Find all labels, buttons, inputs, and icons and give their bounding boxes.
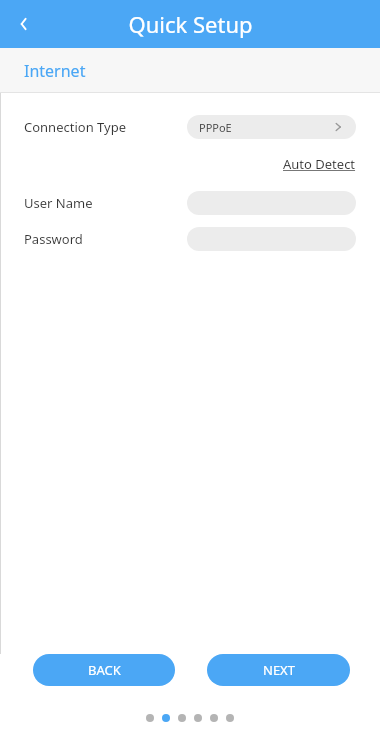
staticText: Quick Setup bbox=[128, 9, 253, 39]
staticText: Password bbox=[24, 230, 83, 248]
staticText: User Name bbox=[24, 194, 93, 212]
staticText: Auto Detect bbox=[283, 155, 356, 173]
button[interactable] bbox=[187, 227, 356, 251]
button[interactable]: Back bbox=[0, 0, 48, 48]
staticText: PPPoE bbox=[199, 120, 232, 135]
staticText: NEXT bbox=[263, 661, 295, 679]
button[interactable]: Auto Detect bbox=[283, 155, 356, 173]
staticText: Internet bbox=[24, 60, 86, 82]
button[interactable] bbox=[187, 191, 356, 215]
button[interactable]: PPPoE bbox=[187, 115, 356, 139]
button[interactable]: NEXT bbox=[207, 654, 350, 686]
button[interactable]: BACK bbox=[33, 654, 175, 686]
staticText: BACK bbox=[88, 661, 121, 679]
staticText: Connection Type bbox=[24, 118, 126, 136]
